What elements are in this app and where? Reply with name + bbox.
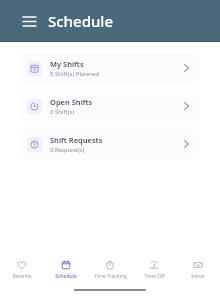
button[interactable]: My Shifts — [20, 52, 200, 84]
staticText: 0 Request(s) — [50, 146, 85, 154]
button[interactable]: Inbox — [176, 257, 220, 282]
button[interactable]: Time Tracking — [88, 257, 132, 282]
staticText: Open Shifts — [50, 97, 93, 107]
staticText: Time Tracking — [94, 273, 127, 280]
staticText: Benefits — [12, 273, 32, 280]
staticText: My Shifts — [50, 59, 84, 69]
staticText: 0 Shift(s) — [50, 108, 75, 116]
button[interactable]: Shift Requests — [20, 128, 200, 160]
staticText: Schedule — [48, 11, 113, 31]
staticText: Inbox — [191, 273, 205, 280]
button[interactable]: Benefits — [0, 257, 44, 282]
button[interactable]: Time Off — [132, 257, 176, 282]
button[interactable]: Open navigation menu — [18, 10, 40, 32]
staticText: Time Off — [144, 273, 165, 280]
staticText: 5 Shift(s) Planned — [50, 70, 99, 78]
staticText: Shift Requests — [50, 135, 103, 145]
button[interactable]: Schedule — [44, 257, 88, 282]
button[interactable]: Open Shifts — [20, 90, 200, 122]
staticText: Schedule — [55, 273, 77, 280]
